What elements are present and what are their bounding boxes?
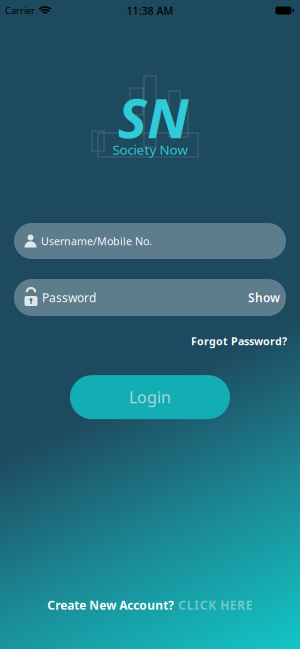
staticText: CLICK HERE — [178, 597, 253, 613]
button[interactable]: Show — [248, 289, 280, 305]
staticText: Society Now — [112, 141, 187, 158]
staticText: Password — [42, 289, 96, 305]
button[interactable]: Login — [70, 375, 230, 419]
staticText: Login — [129, 386, 171, 408]
button[interactable]: CLICK HERE — [178, 597, 253, 613]
staticText: 11:38 AM — [126, 3, 173, 18]
staticText: Create New Account? — [47, 597, 174, 613]
staticText: Carrier — [5, 4, 35, 17]
staticText: Show — [248, 289, 280, 305]
button[interactable]: Forgot Password? — [191, 334, 287, 348]
button[interactable]: Password — [14, 279, 286, 316]
staticText: Forgot Password? — [191, 334, 287, 348]
button[interactable]: Username/Mobile No. — [14, 223, 286, 259]
staticText: Username/Mobile No. — [41, 234, 152, 248]
staticText: SN — [119, 82, 187, 153]
